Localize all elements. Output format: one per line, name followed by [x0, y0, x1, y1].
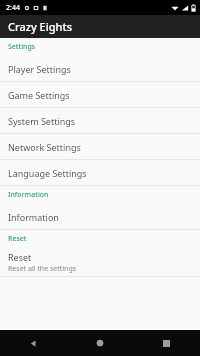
staticText: Information	[8, 190, 49, 200]
button[interactable]: Information	[0, 204, 200, 229]
button[interactable]: Network Settings	[0, 134, 200, 159]
staticText: Information	[8, 211, 59, 223]
staticText: System Settings	[8, 115, 76, 127]
button[interactable]: Recent apps	[133, 330, 200, 356]
button[interactable]: System Settings	[0, 108, 200, 133]
staticText: Reset	[8, 234, 27, 244]
button[interactable]: Player Settings	[0, 56, 200, 81]
staticText: Reset all the settings	[8, 264, 77, 274]
staticText: Language Settings	[8, 167, 87, 179]
staticText: Game Settings	[8, 89, 70, 101]
button[interactable]: Home	[66, 330, 133, 356]
button[interactable]: Back	[0, 330, 66, 356]
button[interactable]: Reset	[0, 248, 200, 276]
staticText: Reset	[8, 251, 32, 263]
staticText: 2:44	[6, 3, 20, 13]
staticText: Player Settings	[8, 63, 71, 75]
staticText: Network Settings	[8, 141, 81, 153]
staticText: Crazy Eights	[8, 19, 72, 34]
button[interactable]: Language Settings	[0, 160, 200, 185]
button[interactable]: Game Settings	[0, 82, 200, 107]
staticText: Settings	[8, 42, 36, 52]
